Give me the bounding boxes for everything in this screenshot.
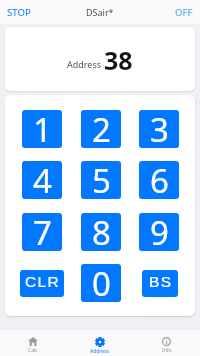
button[interactable]: 0 <box>81 264 121 302</box>
button[interactable]: STOP <box>0 2 38 23</box>
button[interactable]: Info <box>133 330 200 356</box>
button[interactable]: 7 <box>22 213 62 251</box>
button[interactable]: OFF <box>168 2 200 23</box>
button[interactable]: BS <box>142 270 178 297</box>
staticText: 0 <box>92 264 111 299</box>
button[interactable]: 6 <box>139 161 179 199</box>
staticText: 5 <box>92 161 111 196</box>
staticText: Info <box>162 347 172 354</box>
staticText: 2 <box>92 110 111 145</box>
staticText: 9 <box>150 213 169 248</box>
staticText: Cab <box>28 347 38 354</box>
staticText: 4 <box>33 161 52 196</box>
button[interactable]: 5 <box>81 161 121 199</box>
staticText: CLR <box>25 273 61 290</box>
button[interactable]: Address <box>66 330 133 356</box>
staticText: 3 <box>150 110 169 145</box>
button[interactable]: 2 <box>81 110 121 148</box>
staticText: 7 <box>33 213 52 248</box>
staticText: 8 <box>92 213 111 248</box>
staticText: 1 <box>33 110 52 145</box>
button[interactable]: 1 <box>22 110 62 148</box>
staticText: BS <box>149 273 173 290</box>
button[interactable]: 9 <box>139 213 179 251</box>
staticText: 6 <box>150 161 169 196</box>
button[interactable]: 4 <box>22 161 62 199</box>
staticText: OFF <box>175 6 193 19</box>
button[interactable]: 8 <box>81 213 121 251</box>
staticText: STOP <box>7 6 31 19</box>
staticText: Address <box>67 58 102 70</box>
button[interactable]: Cab <box>0 330 66 356</box>
staticText: Address <box>90 348 109 355</box>
button[interactable]: CLR <box>20 270 64 297</box>
button[interactable]: 3 <box>139 110 179 148</box>
staticText: 38 <box>104 43 133 77</box>
staticText: DSair* <box>86 6 114 18</box>
